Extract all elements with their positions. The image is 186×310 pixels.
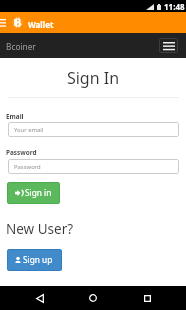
staticText: Wallet bbox=[28, 19, 54, 30]
button[interactable]: Open navigation drawer bbox=[0, 12, 11, 33]
staticText: Sign In bbox=[0, 67, 186, 89]
staticText: Your email bbox=[14, 126, 44, 134]
staticText: Email bbox=[6, 112, 24, 121]
button[interactable]: Your email bbox=[8, 122, 179, 137]
button[interactable]: Recent apps bbox=[135, 286, 159, 310]
button[interactable]: Back bbox=[28, 286, 52, 310]
staticText: Password bbox=[14, 163, 41, 171]
button[interactable]: Sign up bbox=[7, 249, 62, 271]
staticText: Sign up bbox=[23, 254, 53, 265]
staticText: Sign in bbox=[25, 187, 52, 198]
staticText: Bcoiner bbox=[6, 41, 36, 52]
staticText: 11:48 bbox=[164, 1, 185, 12]
button[interactable]: Home bbox=[81, 286, 105, 310]
button[interactable]: Toggle navigation bbox=[159, 38, 178, 53]
button[interactable]: Sign in bbox=[7, 182, 60, 204]
staticText: New User? bbox=[6, 220, 74, 238]
button[interactable]: Password bbox=[8, 159, 179, 174]
staticText: Password bbox=[6, 148, 37, 157]
